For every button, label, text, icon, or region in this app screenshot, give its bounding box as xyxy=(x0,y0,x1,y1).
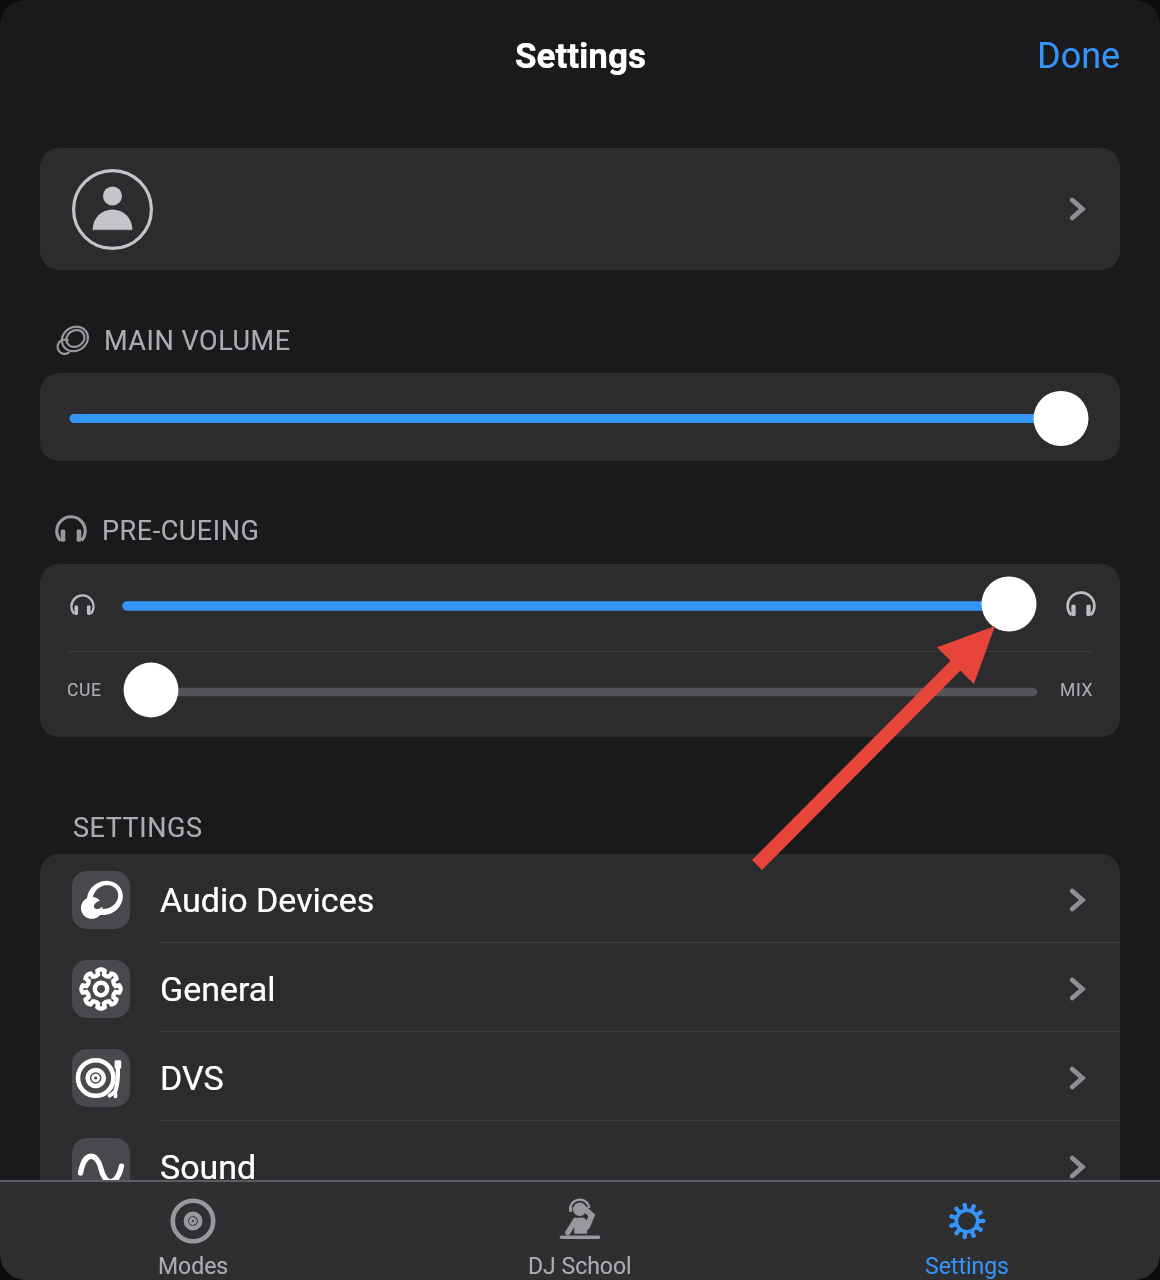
staticText: Settings xyxy=(515,36,646,77)
button[interactable]: Account xyxy=(40,148,1120,270)
button[interactable]: Cue mix slider xyxy=(40,652,1120,737)
button[interactable]: DJ School xyxy=(386,1182,773,1280)
staticText: MAIN VOLUME xyxy=(104,325,291,357)
staticText: DVS xyxy=(160,1058,224,1098)
staticText: PRE-CUEING xyxy=(102,515,260,547)
staticText: SETTINGS xyxy=(73,812,203,844)
button[interactable]: Done xyxy=(1027,27,1131,85)
staticText: MIX xyxy=(1060,680,1093,701)
button[interactable]: Sound xyxy=(40,1121,1120,1210)
staticText: Modes xyxy=(158,1253,229,1280)
staticText: DJ School xyxy=(528,1253,632,1280)
button[interactable]: Modes xyxy=(0,1182,386,1280)
button[interactable]: Settings xyxy=(773,1182,1160,1280)
button[interactable]: DVS xyxy=(40,1032,1120,1121)
staticText: Settings xyxy=(925,1253,1009,1280)
staticText: CUE xyxy=(67,680,102,701)
button[interactable]: General xyxy=(40,943,1120,1032)
staticText: Sound xyxy=(160,1147,257,1187)
staticText: Done xyxy=(1037,35,1121,77)
button[interactable]: Main volume slider xyxy=(40,373,1120,461)
button[interactable]: Pre-cueing volume xyxy=(40,564,1120,651)
staticText: Audio Devices xyxy=(160,880,375,920)
staticText: General xyxy=(160,969,276,1009)
button[interactable]: Audio Devices xyxy=(40,854,1120,943)
